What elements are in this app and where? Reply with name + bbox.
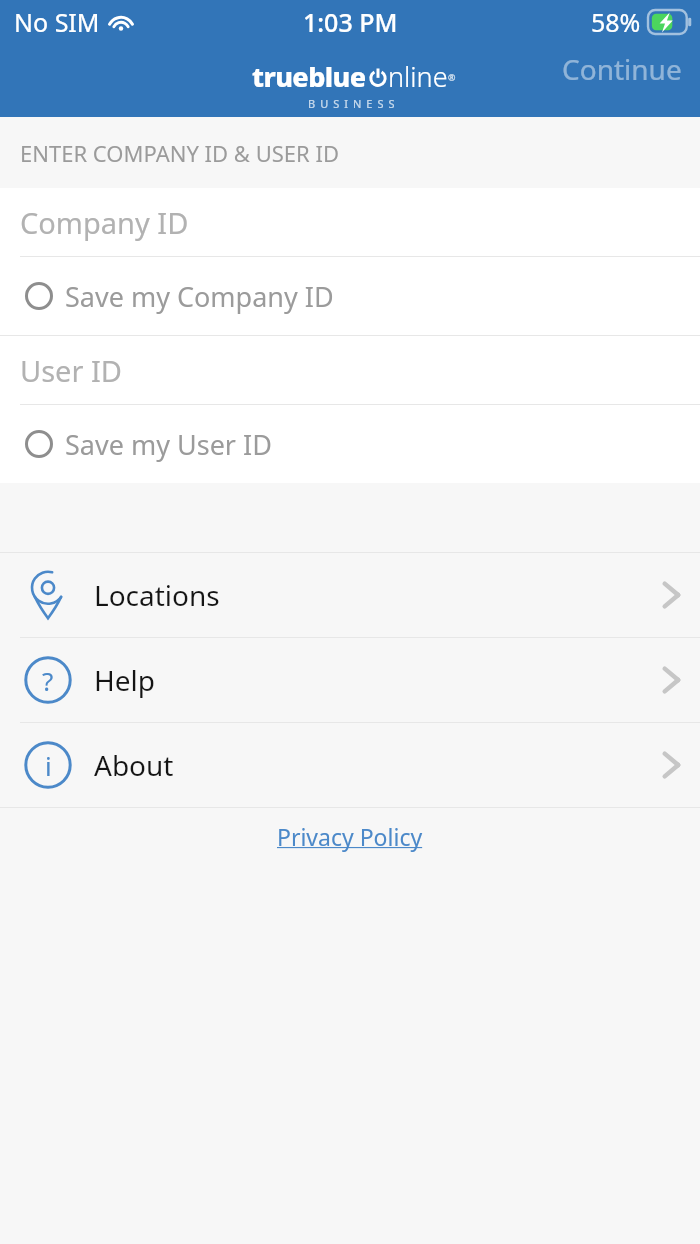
button[interactable]: Privacy Policy	[271, 815, 429, 858]
staticText: ®	[448, 71, 456, 83]
button[interactable]: Company ID	[0, 188, 700, 256]
staticText: Save my Company ID	[65, 278, 334, 315]
button[interactable]: Continue	[556, 46, 688, 92]
staticText: nline	[388, 58, 448, 95]
staticText: Continue	[562, 50, 682, 88]
staticText: trueblue	[252, 58, 366, 95]
button[interactable]: Help	[0, 638, 700, 722]
staticText: BUSINESS	[308, 96, 400, 111]
staticText: Company ID	[20, 203, 189, 242]
staticText: Help	[94, 661, 155, 699]
staticText: About	[94, 746, 174, 784]
button[interactable]: Save my User ID	[0, 405, 700, 483]
button[interactable]: Save my Company ID	[0, 257, 700, 335]
staticText: i	[45, 748, 52, 783]
staticText: 58%	[591, 5, 641, 39]
staticText: No SIM	[14, 5, 100, 39]
staticText: Privacy Policy	[277, 821, 423, 852]
staticText: ?	[42, 663, 54, 698]
staticText: Locations	[94, 576, 220, 614]
staticText: Save my User ID	[65, 426, 272, 463]
staticText: User ID	[20, 351, 122, 390]
staticText: 1:03 PM	[303, 5, 398, 39]
staticText: ENTER COMPANY ID & USER ID	[20, 138, 339, 168]
button[interactable]: User ID	[0, 336, 700, 404]
button[interactable]: About	[0, 723, 700, 807]
button[interactable]: Locations	[0, 553, 700, 637]
